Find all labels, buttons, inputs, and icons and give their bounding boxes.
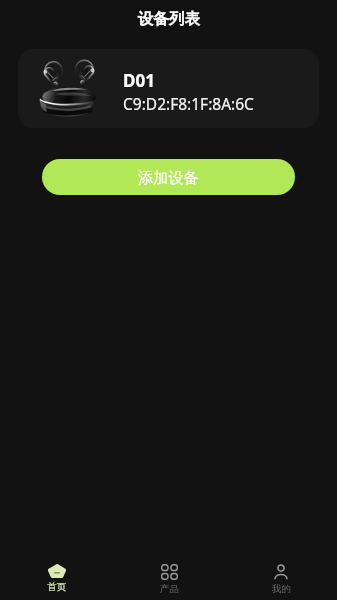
other: 首页 (48, 564, 66, 578)
button[interactable]: 添加设备 (42, 159, 295, 195)
other: 我的 (273, 564, 289, 580)
staticText: C9:D2:F8:1F:8A:6C (123, 93, 254, 114)
button[interactable]: 首页 (0, 564, 113, 593)
staticText: 添加设备 (138, 168, 199, 187)
button[interactable]: 产品 (113, 564, 225, 595)
staticText: 首页 (47, 581, 66, 593)
staticText: D01 (123, 69, 155, 92)
staticText: 设备列表 (138, 9, 200, 29)
staticText: 产品 (160, 583, 179, 595)
staticText: 我的 (272, 583, 291, 595)
button[interactable]: 我的 (225, 564, 337, 595)
button[interactable]: D01 (18, 49, 319, 128)
other: 产品 (161, 564, 178, 580)
